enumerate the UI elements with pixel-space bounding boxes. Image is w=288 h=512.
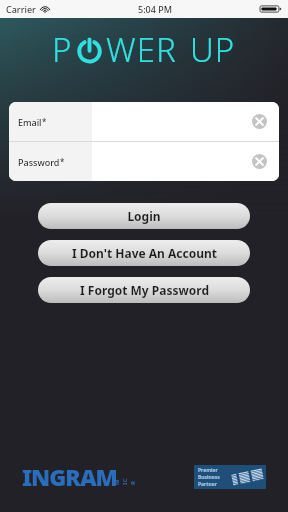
staticText: I Forgot My Password: [80, 282, 209, 298]
staticText: Password: [18, 156, 60, 168]
button[interactable]: Clear Password: [240, 142, 279, 181]
button[interactable]: Login: [38, 203, 250, 229]
button[interactable]: Password: [9, 142, 279, 181]
staticText: Login: [127, 208, 161, 224]
button[interactable]: Clear Email: [240, 102, 279, 141]
staticText: *: [42, 116, 47, 127]
staticText: INGRAM: [22, 461, 117, 492]
staticText: I Don't Have An Account: [72, 245, 217, 261]
button[interactable]: Email: [9, 102, 279, 141]
staticText: Email: [18, 116, 42, 128]
staticText: Partner: [198, 481, 217, 488]
staticText: Carrier: [6, 3, 36, 15]
staticText: WER: [106, 27, 177, 72]
staticText: P: [52, 27, 73, 72]
staticText: Premier: [198, 467, 218, 474]
staticText: 5:04 PM: [138, 3, 172, 15]
staticText: Business: [198, 474, 220, 481]
button[interactable]: I Forgot My Password: [38, 277, 250, 303]
button[interactable]: I Don't Have An Account: [38, 240, 250, 266]
staticText: *: [60, 156, 65, 167]
staticText: UP: [190, 27, 236, 72]
staticText: MICRO: [113, 477, 135, 485]
